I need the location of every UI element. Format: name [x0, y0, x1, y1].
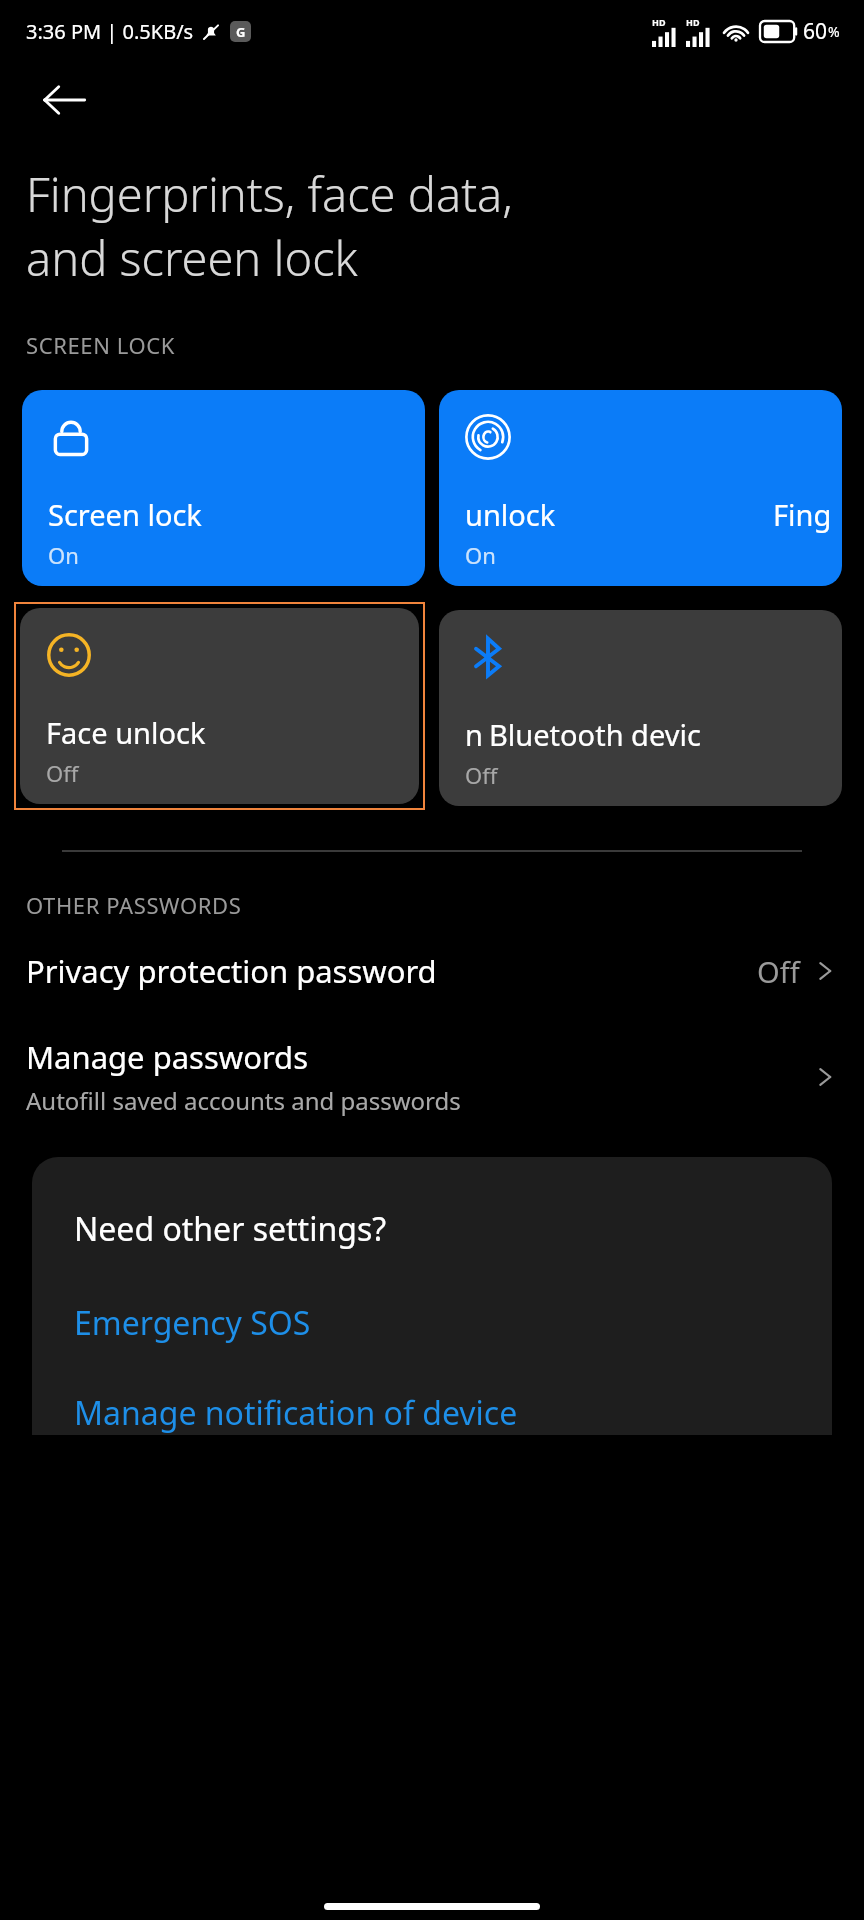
staticText: Off: [465, 760, 498, 790]
staticText: n: [465, 715, 483, 754]
staticText: Emergency SOS: [74, 1301, 311, 1345]
staticText: OTHER PASSWORDS: [26, 890, 242, 920]
staticText: unlock: [465, 495, 556, 534]
staticText: Bluetooth devic: [489, 715, 701, 754]
staticText: Privacy protection password: [26, 950, 437, 992]
button[interactable]: n: [439, 610, 842, 806]
button[interactable]: Screen lock: [22, 390, 425, 586]
staticText: 3:36 PM | 0.5KB/s: [26, 18, 194, 45]
button[interactable]: Manage notification of device: [74, 1391, 518, 1435]
staticText: SCREEN LOCK: [26, 330, 175, 360]
button[interactable]: Manage passwords: [0, 1028, 864, 1125]
staticText: Face unlock: [46, 713, 206, 752]
staticText: G: [236, 23, 246, 41]
staticText: HD: [652, 16, 666, 28]
staticText: and screen lock: [26, 226, 358, 290]
button[interactable]: Emergency SOS: [74, 1301, 311, 1345]
staticText: Autofill saved accounts and passwords: [26, 1084, 461, 1117]
staticText: Manage notification of device: [74, 1391, 518, 1435]
staticText: On: [465, 540, 496, 570]
button[interactable]: Privacy protection password: [0, 942, 864, 1000]
button[interactable]: Back: [26, 62, 102, 138]
button[interactable]: Face unlock: [20, 608, 419, 804]
staticText: %: [828, 22, 840, 41]
button[interactable]: unlock: [439, 390, 842, 586]
staticText: Fing: [773, 495, 832, 534]
staticText: HD: [686, 16, 700, 28]
staticText: On: [48, 540, 79, 570]
staticText: Fingerprints, face data,: [26, 162, 513, 226]
staticText: Off: [46, 758, 79, 788]
staticText: Off: [757, 952, 800, 991]
staticText: Screen lock: [48, 495, 202, 534]
staticText: Need other settings?: [74, 1207, 387, 1251]
staticText: 60: [803, 17, 828, 46]
staticText: Manage passwords: [26, 1036, 309, 1078]
